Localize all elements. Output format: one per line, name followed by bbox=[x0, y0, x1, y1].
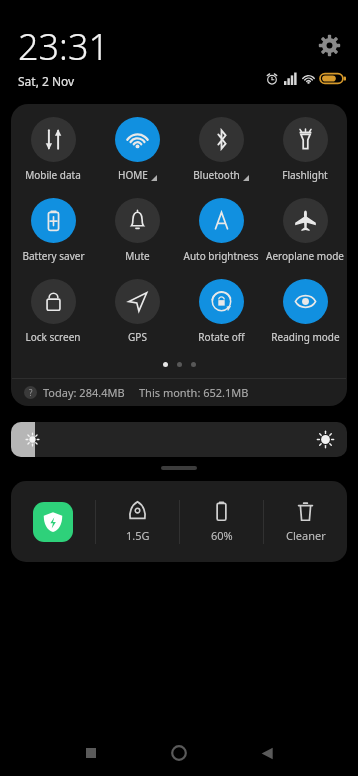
button[interactable]: Settings bbox=[314, 30, 344, 60]
staticText: Flashlight bbox=[282, 168, 328, 182]
button[interactable]: Battery saver bbox=[11, 196, 95, 265]
staticText: Bluetooth bbox=[193, 168, 240, 182]
staticText: Today: 284.4MB bbox=[43, 385, 125, 400]
staticText: Lock screen bbox=[25, 330, 81, 344]
button[interactable]: Security bbox=[33, 502, 73, 542]
button[interactable]: ? bbox=[11, 379, 347, 406]
button[interactable]: Reading mode bbox=[263, 277, 347, 346]
button[interactable]: Flashlight bbox=[263, 115, 347, 184]
button[interactable]: Home bbox=[162, 736, 196, 770]
staticText: Mute bbox=[125, 249, 150, 263]
staticText: Cleaner bbox=[286, 528, 326, 543]
staticText: 23:31 bbox=[18, 22, 110, 71]
button[interactable]: Rotate off bbox=[179, 277, 263, 346]
staticText: Aeroplane mode bbox=[266, 249, 344, 263]
button[interactable]: Back bbox=[250, 736, 284, 770]
staticText: GPS bbox=[128, 330, 147, 344]
staticText: Mobile data bbox=[25, 168, 81, 182]
staticText: 60% bbox=[211, 528, 233, 543]
staticText: Reading mode bbox=[271, 330, 340, 344]
button[interactable]: Mobile data bbox=[11, 115, 95, 184]
button[interactable]: 1.5G bbox=[96, 500, 179, 543]
button[interactable]: GPS bbox=[95, 277, 179, 346]
staticText: Rotate off bbox=[198, 330, 245, 344]
staticText: Sat, 2 Nov bbox=[18, 73, 75, 89]
button[interactable]: Recents bbox=[74, 736, 108, 770]
staticText: This month: 652.1MB bbox=[139, 385, 249, 400]
button[interactable]: HOME bbox=[95, 115, 179, 184]
button[interactable]: Aeroplane mode bbox=[263, 196, 347, 265]
staticText: 1.5G bbox=[126, 528, 150, 543]
staticText: ? bbox=[29, 387, 33, 398]
staticText: Auto brightness bbox=[183, 249, 259, 263]
button[interactable]: Mute bbox=[95, 196, 179, 265]
button[interactable]: Cleaner bbox=[264, 500, 347, 543]
button[interactable]: 60% bbox=[180, 500, 263, 543]
staticText: HOME bbox=[118, 168, 148, 182]
button[interactable]: Brightness bbox=[11, 422, 347, 457]
button[interactable]: Lock screen bbox=[11, 277, 95, 346]
staticText: Battery saver bbox=[22, 249, 85, 263]
button[interactable]: Auto brightness bbox=[179, 196, 263, 265]
button[interactable]: Bluetooth bbox=[179, 115, 263, 184]
